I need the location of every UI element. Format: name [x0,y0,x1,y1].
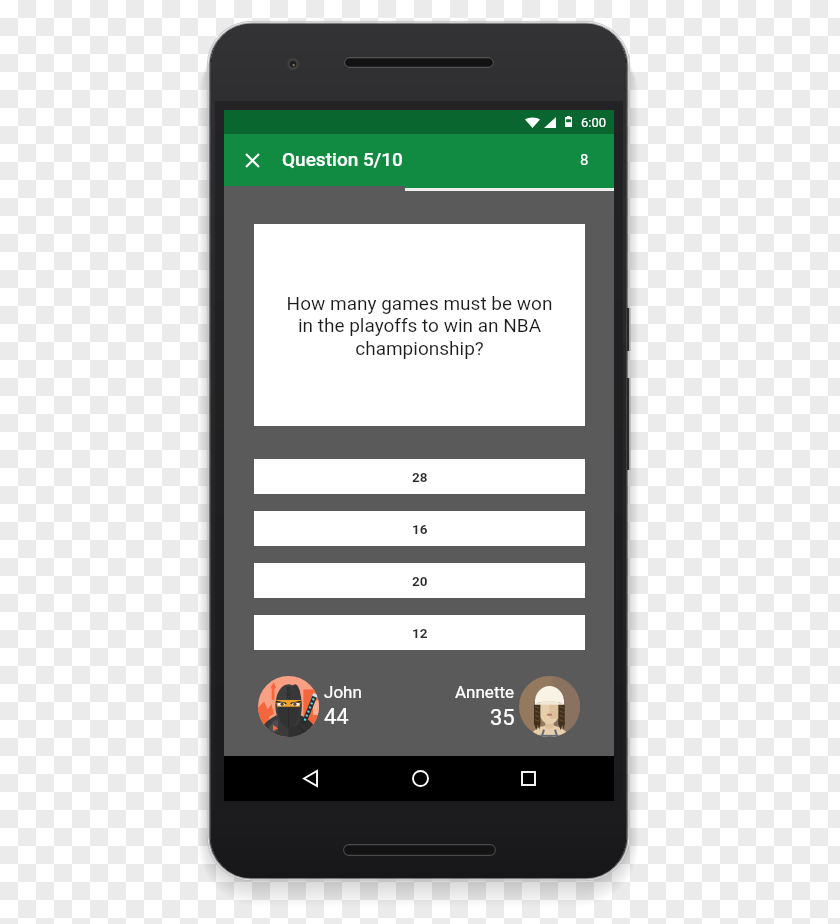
staticText: 12 [412,625,428,641]
button[interactable]: 12 [254,615,585,650]
staticText: John [324,682,362,702]
button[interactable]: 20 [254,563,585,598]
staticText: 16 [412,521,428,537]
button[interactable]: John avatar [258,676,319,737]
staticText: 35 [490,705,515,731]
button[interactable]: Back [290,756,330,801]
staticText: 6:00 [581,115,607,130]
button[interactable]: Annette avatar [519,676,580,737]
staticText: Annette [455,682,515,702]
button[interactable]: Recents [508,756,548,801]
button[interactable]: Home [400,756,440,801]
staticText: 8 [580,151,589,169]
staticText: Question 5/10 [282,148,403,170]
staticText: 20 [412,573,428,589]
button[interactable]: Close [238,146,266,174]
staticText: 44 [324,704,349,730]
button[interactable]: 28 [254,459,585,494]
staticText: How many games must be won in the playof… [282,292,557,360]
button[interactable]: 16 [254,511,585,546]
staticText: 28 [412,469,428,485]
